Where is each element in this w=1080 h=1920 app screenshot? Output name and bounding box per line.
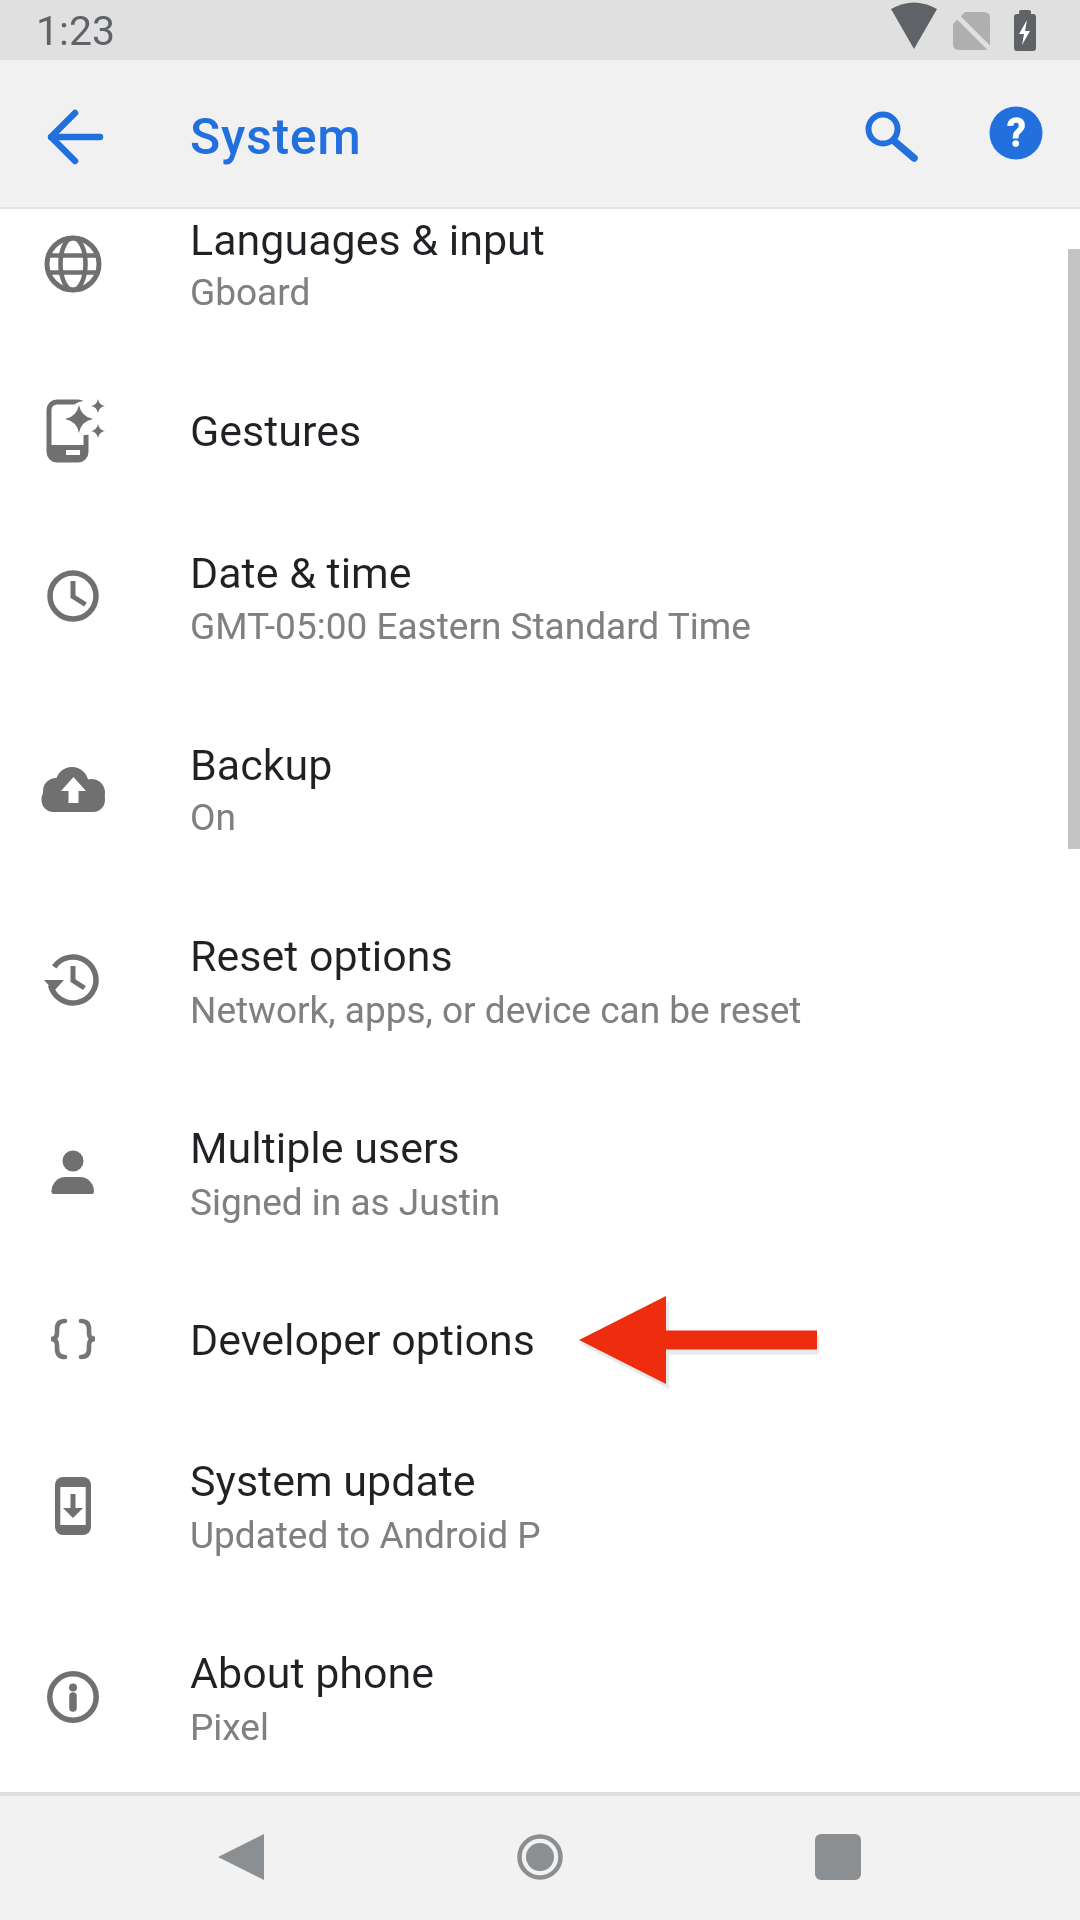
button[interactable]: [192, 1809, 288, 1905]
staticText: Reset options: [190, 931, 453, 981]
button[interactable]: Date & time: [0, 500, 1080, 692]
staticText: About phone: [190, 1648, 435, 1698]
staticText: On: [190, 796, 236, 839]
button[interactable]: [27, 89, 123, 185]
staticText: Date & time: [190, 548, 412, 598]
staticText: System update: [190, 1456, 476, 1506]
button[interactable]: Reset options: [0, 885, 1080, 1077]
staticText: GMT-05:00 Eastern Standard Time: [190, 605, 751, 648]
button[interactable]: [790, 1809, 886, 1905]
staticText: Network, apps, or device can be reset: [190, 989, 802, 1032]
button[interactable]: [835, 85, 931, 181]
staticText: Pixel: [190, 1706, 269, 1749]
staticText: Updated to Android P: [190, 1514, 541, 1557]
staticText: Gestures: [190, 406, 362, 456]
button[interactable]: Languages & input: [0, 168, 1080, 360]
staticText: Signed in as Justin: [190, 1181, 501, 1224]
button[interactable]: About phone: [0, 1601, 1080, 1793]
staticText: Multiple users: [190, 1123, 460, 1173]
button[interactable]: Backup: [0, 695, 1080, 887]
button[interactable]: [492, 1809, 588, 1905]
staticText: Gboard: [190, 271, 311, 314]
button[interactable]: System update: [0, 1410, 1080, 1602]
staticText: Developer options: [190, 1315, 535, 1365]
button[interactable]: Developer options: [0, 1243, 1080, 1435]
staticText: System: [190, 108, 362, 167]
staticText: ?: [1007, 111, 1026, 156]
button[interactable]: Gestures: [0, 335, 1080, 527]
staticText: 1:23: [36, 7, 116, 55]
staticText: Languages & input: [190, 215, 545, 265]
button[interactable]: Multiple users: [0, 1079, 1080, 1271]
staticText: Backup: [190, 740, 333, 790]
button[interactable]: ?: [968, 85, 1064, 181]
